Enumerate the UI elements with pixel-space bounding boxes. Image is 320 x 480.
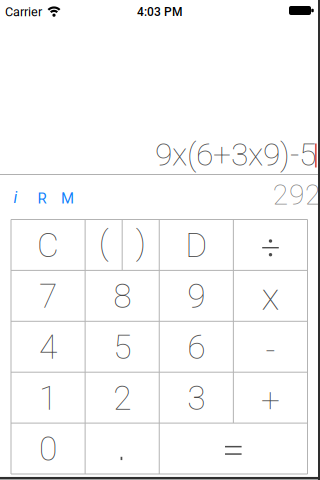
button[interactable]: Info xyxy=(4,182,26,212)
staticText: 2 xyxy=(113,378,131,418)
staticText: i xyxy=(13,188,17,207)
button[interactable]: Radians xyxy=(30,183,54,213)
staticText: - xyxy=(265,330,275,369)
staticText: 7 xyxy=(39,277,57,316)
button[interactable]: 5 xyxy=(85,322,159,373)
button[interactable]: + xyxy=(233,375,307,426)
staticText: 4:03 PM xyxy=(137,5,182,19)
button[interactable]: Decimal point xyxy=(85,423,159,474)
button[interactable]: 4 xyxy=(11,322,85,373)
staticText: 9x(6+3x9)-5 xyxy=(155,136,316,173)
staticText: Carrier xyxy=(5,5,42,19)
staticText: 292 xyxy=(273,178,320,211)
button[interactable]: ( xyxy=(85,217,122,268)
button[interactable]: 8 xyxy=(85,271,159,322)
staticText: + xyxy=(261,381,280,420)
button[interactable]: Equals xyxy=(159,423,307,474)
staticText: 1 xyxy=(39,378,57,418)
staticText: M xyxy=(61,190,74,207)
staticText: 6 xyxy=(187,328,205,367)
staticText: D xyxy=(185,226,207,265)
button[interactable]: 7 xyxy=(11,271,85,322)
staticText: x xyxy=(261,275,279,319)
staticText: 3 xyxy=(187,378,205,418)
button[interactable]: Memory xyxy=(55,183,79,213)
button[interactable]: Divide xyxy=(233,219,307,270)
staticText: R xyxy=(37,190,46,207)
button[interactable]: 1 xyxy=(11,373,85,424)
staticText: 9 xyxy=(187,277,205,316)
button[interactable]: - xyxy=(233,324,307,375)
button[interactable]: D xyxy=(159,220,233,271)
staticText: 4 xyxy=(39,328,57,367)
staticText: 5 xyxy=(113,328,131,367)
staticText: ( xyxy=(99,223,109,262)
staticText: 8 xyxy=(113,277,131,316)
button[interactable]: 9 xyxy=(159,271,233,322)
button[interactable]: ) xyxy=(122,217,159,268)
staticText: ) xyxy=(136,223,146,262)
staticText: C xyxy=(37,226,59,265)
button[interactable]: 6 xyxy=(159,322,233,373)
button[interactable]: 3 xyxy=(159,373,233,424)
button[interactable]: x xyxy=(233,272,307,322)
button[interactable]: C xyxy=(11,220,85,271)
button[interactable]: 0 xyxy=(11,424,85,474)
staticText: 0 xyxy=(39,429,57,469)
button[interactable]: 2 xyxy=(85,373,159,424)
